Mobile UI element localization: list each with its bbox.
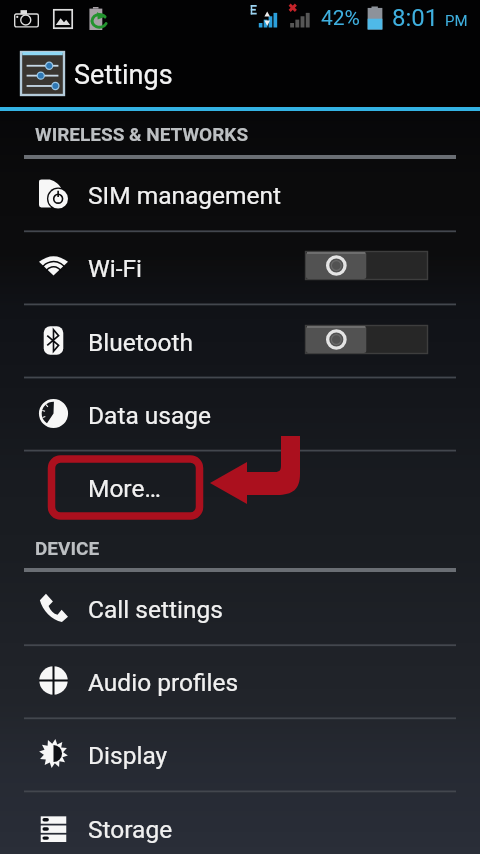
button[interactable]: Data usage xyxy=(0,378,480,451)
button[interactable]: Settings xyxy=(0,32,480,105)
staticText: Call settings xyxy=(88,595,223,624)
staticText: Audio profiles xyxy=(88,668,239,697)
staticText: Bluetooth xyxy=(88,328,193,357)
button[interactable]: Toggle switch, off xyxy=(305,325,428,354)
button[interactable]: Call settings xyxy=(0,572,480,645)
staticText: 42% xyxy=(321,6,360,31)
staticText: Display xyxy=(88,741,168,770)
button[interactable]: Bluetooth xyxy=(0,305,480,378)
button[interactable]: Storage xyxy=(0,792,480,854)
staticText: PM xyxy=(445,12,468,30)
staticText: Storage xyxy=(88,815,173,844)
staticText: 8:01 xyxy=(392,4,439,32)
staticText: Wi-Fi xyxy=(88,254,142,283)
button[interactable]: More… xyxy=(0,451,480,524)
button[interactable]: SIM management xyxy=(0,158,480,231)
button[interactable]: Toggle switch, off xyxy=(305,251,428,280)
button[interactable]: Display xyxy=(0,718,480,791)
staticText: More… xyxy=(88,474,161,503)
button[interactable]: Audio profiles xyxy=(0,645,480,718)
staticText: WIRELESS & NETWORKS xyxy=(35,123,249,145)
staticText: Data usage xyxy=(88,401,212,430)
staticText: SIM management xyxy=(88,181,282,210)
staticText: Settings xyxy=(74,59,173,91)
button[interactable]: Wi-Fi xyxy=(0,231,480,304)
staticText: DEVICE xyxy=(35,537,100,559)
